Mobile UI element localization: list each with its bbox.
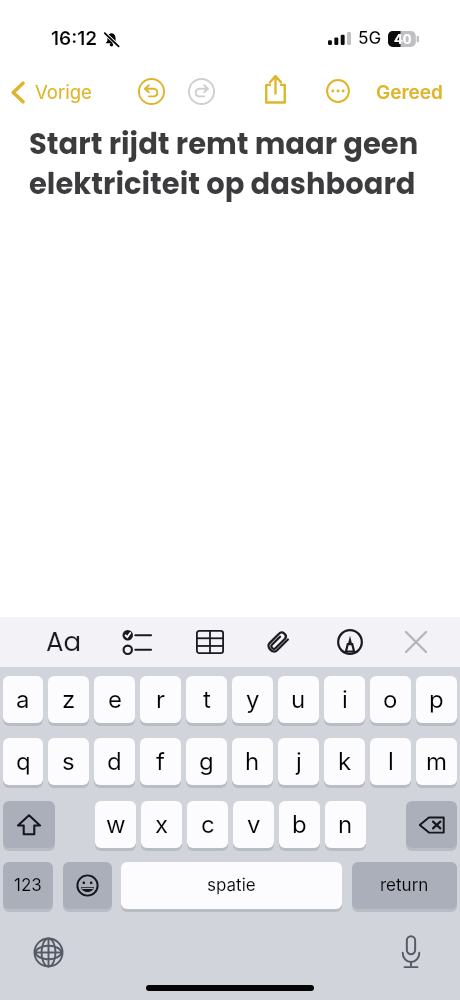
button[interactable]: Markup [328,617,372,667]
button[interactable]: l [370,738,411,788]
button[interactable]: Checklist [114,617,158,667]
button[interactable]: u [278,676,319,726]
staticText: x [155,810,169,839]
button[interactable]: Shift [3,801,55,851]
staticText: s [62,747,75,776]
staticText: j [296,747,302,776]
button[interactable]: z [48,676,89,726]
staticText: m [426,747,448,776]
staticText: q [16,747,31,776]
staticText: o [383,685,398,714]
button[interactable]: Backspace [406,801,457,851]
staticText: 123 [14,875,42,896]
staticText: r [156,685,166,714]
staticText: c [201,810,215,839]
button[interactable]: o [370,676,411,726]
button[interactable]: x [141,801,182,851]
staticText: Gereed [376,81,443,104]
button[interactable]: t [186,676,227,726]
button[interactable]: Attach file [256,617,300,667]
button[interactable]: d [94,738,135,788]
staticText: e [108,685,122,714]
button[interactable]: Undo [129,69,173,113]
button[interactable]: return [352,862,457,912]
button[interactable]: r [140,676,181,726]
staticText: t [203,685,211,714]
staticText: i [342,685,348,714]
button[interactable]: k [324,738,365,788]
button[interactable]: b [279,801,320,851]
staticText: 16:12 [51,27,98,50]
button[interactable]: Text formatting [42,617,86,667]
staticText: return [380,875,429,896]
staticText: g [199,747,214,776]
staticText: u [291,685,306,714]
staticText: 40 [394,31,412,47]
button[interactable]: Change language [29,933,67,971]
button[interactable]: Vorige [6,68,100,116]
staticText: y [246,685,260,714]
button[interactable]: q [3,738,43,788]
staticText: b [292,810,307,839]
staticText: v [247,810,261,839]
button[interactable]: j [278,738,319,788]
button[interactable]: f [140,738,181,788]
button[interactable]: Share [253,67,297,111]
staticText: Vorige [35,81,92,103]
staticText: Aa [46,624,82,660]
button[interactable]: i [324,676,365,726]
staticText: d [107,747,122,776]
button[interactable]: g [186,738,227,788]
button[interactable]: n [325,801,366,851]
button[interactable]: h [232,738,273,788]
staticText: l [388,747,394,776]
button[interactable]: Gereed [368,66,451,118]
button[interactable]: c [187,801,228,851]
button[interactable]: 123 [3,862,53,912]
button[interactable]: Table [188,617,232,667]
button[interactable]: Dictate [392,933,430,971]
button[interactable]: s [48,738,89,788]
button[interactable]: p [416,676,457,726]
button[interactable]: m [416,738,457,788]
button[interactable]: y [232,676,273,726]
button[interactable]: e [94,676,135,726]
staticText: f [156,747,165,776]
button[interactable]: Close keyboard [394,617,438,667]
button[interactable]: w [95,801,136,851]
staticText: z [62,685,76,714]
staticText: spatie [207,875,256,896]
staticText: h [245,747,260,776]
staticText: 5G [358,28,382,49]
staticText: Start rijdt remt maar geen elektriciteit… [29,124,429,204]
button[interactable]: a [3,676,43,726]
staticText: k [338,747,352,776]
staticText: n [338,810,353,839]
button[interactable]: Emoji [63,862,112,912]
button[interactable]: v [233,801,274,851]
staticText: p [429,685,444,714]
button[interactable]: More options [316,69,360,113]
staticText: a [16,685,30,714]
staticText: w [106,810,126,839]
button[interactable]: spatie [121,862,342,912]
button[interactable]: Redo [179,69,223,113]
